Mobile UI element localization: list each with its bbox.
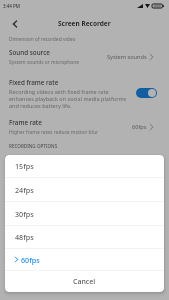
staticText: 30fps bbox=[15, 209, 34, 219]
staticText: Recording videos with fixed frame rate e… bbox=[9, 88, 127, 109]
button[interactable]: Fixed frame rate bbox=[0, 74, 169, 112]
button[interactable]: 48fps bbox=[5, 226, 164, 248]
staticText: 15fps bbox=[15, 161, 34, 171]
staticText: System sounds or microphone bbox=[9, 59, 79, 66]
staticText: 3:44 PM bbox=[3, 3, 20, 9]
button[interactable]: Cancel bbox=[5, 271, 164, 292]
staticText: 48fps bbox=[15, 232, 34, 242]
button[interactable]: 15fps bbox=[5, 155, 164, 177]
button[interactable]: 24fps bbox=[5, 178, 164, 201]
button[interactable] bbox=[136, 88, 157, 98]
staticText: Fixed frame rate bbox=[9, 78, 59, 87]
button[interactable]: Frame rate bbox=[0, 114, 169, 140]
button[interactable]: Sound source bbox=[0, 44, 169, 70]
staticText: Screen Recorder bbox=[58, 19, 111, 28]
button[interactable]: 30fps bbox=[5, 202, 164, 225]
button[interactable]: Back bbox=[0, 12, 27, 34]
staticText: Higher frame rates reduce motion blur bbox=[9, 129, 98, 136]
staticText: 60fps bbox=[132, 123, 147, 131]
staticText: 24fps bbox=[15, 185, 34, 195]
staticText: RECORDING OPTIONS bbox=[9, 143, 58, 149]
staticText: Frame rate bbox=[9, 118, 42, 127]
staticText: Cancel bbox=[73, 277, 96, 287]
staticText: Dimension of recorded video bbox=[9, 36, 76, 43]
staticText: Sound source bbox=[9, 48, 50, 57]
staticText: 60fps bbox=[21, 255, 40, 265]
button[interactable]: 60fps bbox=[5, 249, 164, 270]
staticText: System sounds bbox=[107, 53, 147, 61]
